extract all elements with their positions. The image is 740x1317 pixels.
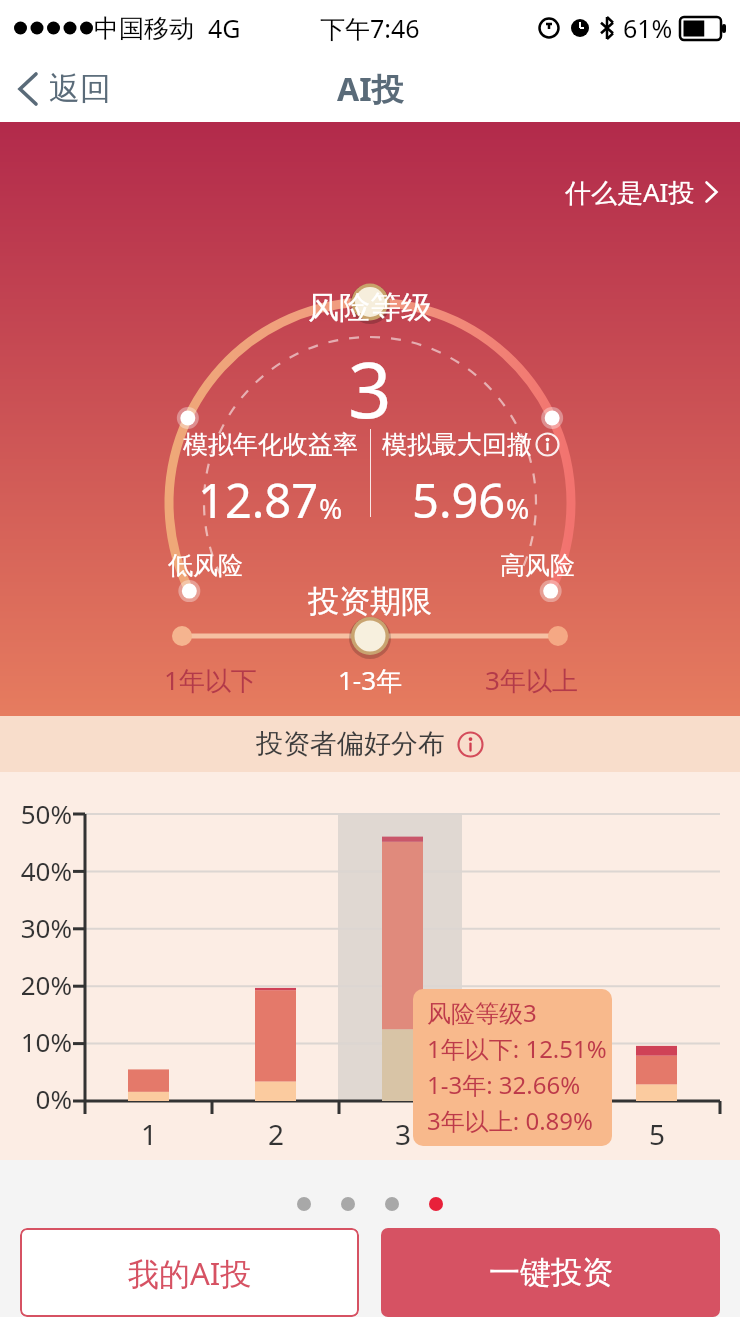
staticText: 一键投资 [489,1253,613,1292]
staticText: 1-3年 [338,662,403,698]
button[interactable]: 投资者偏好分布 [256,727,484,761]
staticText: 1年以下: 12.51% [427,1032,607,1065]
staticText: 模拟最大回撤 [382,429,532,460]
staticText: 投资者偏好分布 [256,727,445,761]
staticText: 1-3年: 32.66% [427,1068,581,1101]
staticText: 3 [383,1115,423,1153]
button[interactable]: 我的AI投 [20,1228,359,1317]
staticText: 1 [129,1115,169,1153]
staticText: 风险等级 [308,288,432,327]
staticText: 3 [348,337,392,441]
button[interactable]: 返回 [0,63,129,114]
button[interactable]: 最大回撤说明 [535,432,560,457]
staticText: AI投 [337,67,404,111]
staticText: 20% [14,967,72,1002]
staticText: 10% [14,1024,72,1059]
staticText: 40% [14,853,72,888]
staticText: 1年以下 [164,662,257,698]
staticText: % [506,489,530,527]
button[interactable]: 什么是AI投 [559,170,724,214]
staticText: 5.96 [412,468,506,532]
staticText: 3年以上: 0.89% [427,1104,593,1137]
staticText: 3年以上 [485,662,578,698]
staticText: 投资期限 [308,582,432,621]
staticText: 中国移动 [94,13,194,44]
button[interactable]: 一键投资 [381,1228,720,1317]
staticText: 2 [256,1115,296,1153]
other: 分布说明 [457,731,484,758]
staticText: 我的AI投 [128,1252,252,1294]
staticText: 0% [14,1081,72,1116]
staticText: 下午7:46 [320,11,420,45]
staticText: % [319,489,343,527]
staticText: 什么是AI投 [565,174,695,210]
staticText: 30% [14,910,72,945]
staticText: 高风险 [500,550,575,581]
staticText: 低风险 [168,550,243,581]
staticText: 返回 [49,69,111,108]
staticText: 4G [208,11,241,45]
button[interactable]: 风险等级3 [413,989,612,1146]
staticText: 模拟年化收益率 [183,429,358,460]
staticText: 12.87 [198,468,319,532]
staticText: 4 [510,1115,550,1153]
staticText: 5 [637,1115,677,1153]
button[interactable]: 投资期限滑块 [0,614,740,658]
staticText: 61% [623,11,673,45]
staticText: 50% [14,796,72,831]
staticText: 风险等级3 [427,996,537,1029]
